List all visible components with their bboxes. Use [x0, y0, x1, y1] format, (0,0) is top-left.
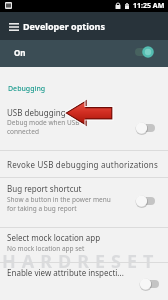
- button[interactable]: USB debugging: [0, 100, 168, 150]
- staticText: Select mock location app: [7, 232, 101, 243]
- button[interactable]: Bug report shortcut: [0, 178, 168, 227]
- staticText: Show a button in the power menu: [7, 195, 111, 204]
- button[interactable]: Select mock location app: [0, 228, 168, 262]
- staticText: USB debugging: [7, 107, 66, 118]
- button[interactable]: Revoke USB debugging authorizations: [0, 151, 168, 177]
- staticText: connected: [7, 127, 39, 136]
- staticText: On: [14, 47, 26, 58]
- staticText: Debugging: [8, 84, 46, 94]
- staticText: Enable view attribute inspecti...: [7, 267, 124, 278]
- button[interactable]: Enable view attribute inspecti...: [0, 263, 168, 300]
- staticText: Developer options: [23, 20, 105, 32]
- staticText: Debug mode when USB: [7, 118, 80, 127]
- staticText: HARDRESET: [2, 249, 160, 274]
- staticText: Bug report shortcut: [7, 183, 82, 194]
- staticText: 11:25 AM: [133, 1, 165, 11]
- button[interactable]: On: [0, 40, 168, 64]
- button[interactable]: Developer options: [0, 12, 168, 40]
- staticText: No mock location app set: [7, 244, 85, 253]
- staticText: Revoke USB debugging authorizations: [7, 159, 159, 170]
- staticText: for taking a bug report: [7, 204, 77, 213]
